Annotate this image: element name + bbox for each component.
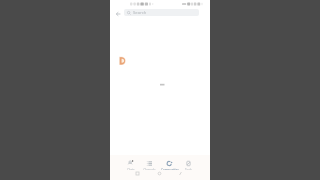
button[interactable]: Chats [121,155,140,170]
staticText: Tools [185,168,192,170]
staticText: Search [133,10,147,16]
staticText: Communities [161,168,179,170]
button[interactable]: Recents [134,170,141,177]
button[interactable]: Channels [140,155,159,170]
staticText: Channels [143,168,156,170]
staticText: Chats [127,168,135,170]
button[interactable]: Search [124,9,199,16]
button[interactable]: Communities [160,155,179,170]
button[interactable]: Home [156,170,163,177]
button[interactable]: Tools [179,155,198,170]
button[interactable]: Back [113,9,122,18]
button[interactable]: Back [177,170,184,177]
